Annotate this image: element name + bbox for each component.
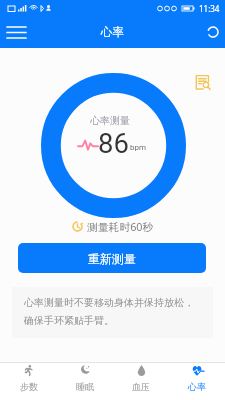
button[interactable]: 心率 (169, 363, 225, 400)
staticText: 睡眠 (76, 381, 94, 392)
button[interactable]: Menu (0, 16, 32, 48)
button[interactable]: Refresh (201, 16, 225, 48)
button[interactable]: 血压 (113, 363, 169, 400)
staticText: 心率测量 (90, 114, 130, 127)
staticText: 心率 (101, 25, 124, 39)
button[interactable]: 步数 (0, 363, 57, 400)
button[interactable]: History records (193, 72, 213, 92)
staticText: 测量耗时60秒 (87, 219, 154, 234)
staticText: 重新测量 (88, 251, 136, 266)
staticText: 心率 (188, 381, 206, 392)
button[interactable]: 睡眠 (57, 363, 113, 400)
staticText: 11:34 (199, 3, 220, 14)
staticText: 心率测量时不要移动身体并保持放松，确保手环紧贴手臂。 (24, 296, 196, 327)
staticText: bpm (130, 143, 146, 152)
staticText: 86 (98, 127, 129, 159)
button[interactable]: 重新测量 (18, 243, 206, 273)
staticText: 步数 (20, 381, 38, 392)
staticText: 血压 (132, 381, 150, 392)
